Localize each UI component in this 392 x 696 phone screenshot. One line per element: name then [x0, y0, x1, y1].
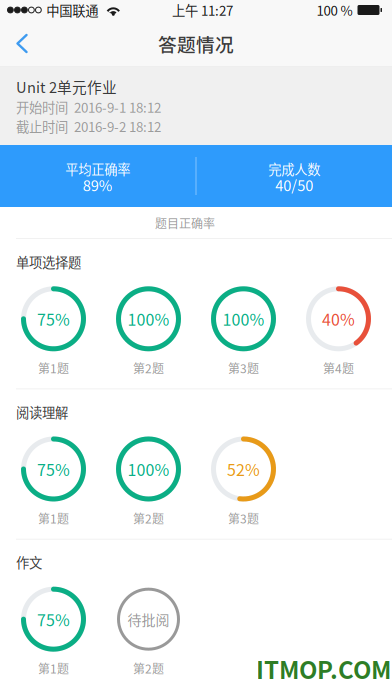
staticText: 待批阅: [127, 609, 169, 629]
staticText: ITMOP.COM: [256, 651, 391, 686]
staticText: 40/50: [275, 174, 313, 195]
staticText: 75%: [37, 608, 70, 631]
staticText: 中国联通: [46, 0, 98, 20]
staticText: 100%: [222, 307, 264, 330]
staticText: 完成人数: [268, 159, 320, 178]
staticText: 第1题: [38, 359, 69, 377]
staticText: 第2题: [133, 509, 164, 527]
staticText: 第3题: [228, 359, 259, 377]
staticText: 第1题: [38, 509, 69, 527]
staticText: 75%: [37, 457, 70, 481]
staticText: 第2题: [133, 660, 164, 677]
staticText: 答题情况: [158, 30, 234, 57]
staticText: 40%: [322, 307, 355, 330]
staticText: 100%: [127, 457, 169, 481]
staticText: 题目正确率: [155, 214, 215, 232]
staticText: 52%: [227, 457, 260, 481]
staticText: 89%: [83, 174, 113, 195]
staticText: 平均正确率: [65, 159, 130, 178]
staticText: 开始时间 2016-9-1 18:12: [16, 97, 161, 116]
button[interactable]: Back: [0, 20, 44, 66]
staticText: 第1题: [38, 660, 69, 677]
staticText: 阅读理解: [16, 402, 68, 421]
staticText: 75%: [37, 307, 70, 330]
staticText: 第3题: [228, 509, 259, 527]
staticText: 单项选择题: [16, 252, 81, 271]
staticText: 第2题: [133, 359, 164, 377]
staticText: 第4题: [323, 359, 354, 377]
staticText: 上午 11:27: [172, 0, 233, 20]
staticText: 截止时间 2016-9-2 18:12: [16, 116, 161, 136]
staticText: 100 %: [316, 0, 352, 20]
staticText: 100%: [127, 307, 169, 330]
staticText: Unit 2单元作业: [16, 76, 117, 97]
staticText: 作文: [16, 552, 42, 572]
